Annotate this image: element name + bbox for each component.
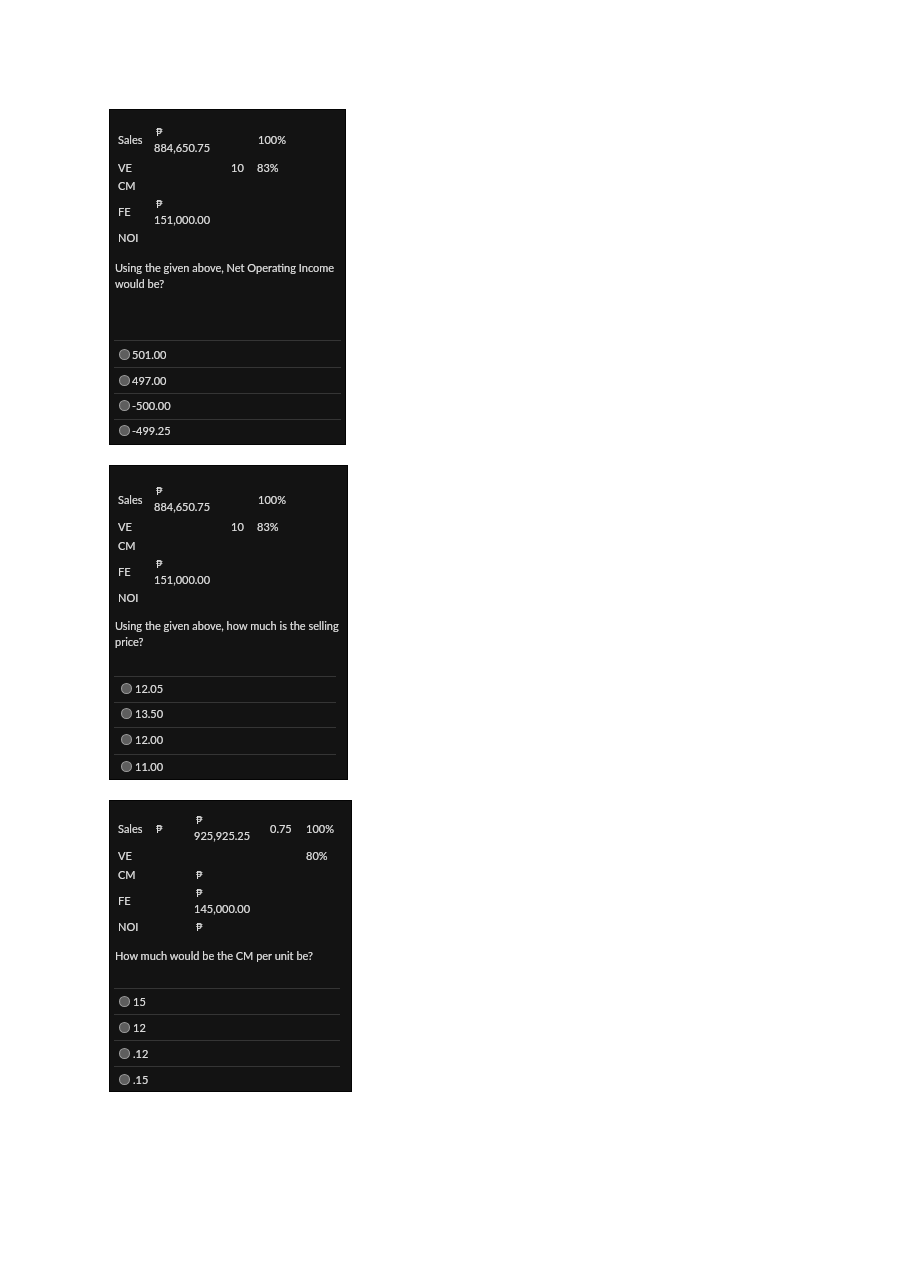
staticText: ₱ <box>196 920 203 933</box>
staticText: 13.50 <box>135 707 164 720</box>
button[interactable]: -499.25 <box>110 419 344 444</box>
staticText: -500.00 <box>132 399 171 412</box>
staticText: How much would be the CM per unit be? <box>115 949 313 962</box>
button[interactable]: -500.00 <box>110 393 344 419</box>
staticText: VE <box>118 849 132 862</box>
button[interactable]: 15 <box>110 988 351 1014</box>
staticText: .12 <box>133 1047 149 1060</box>
button[interactable]: .12 <box>110 1040 351 1066</box>
staticText: 497.00 <box>132 374 167 387</box>
staticText: 100% <box>306 822 334 835</box>
staticText: 12.00 <box>135 733 164 746</box>
staticText: ₱ <box>156 484 163 497</box>
staticText: 12 <box>133 1021 146 1034</box>
staticText: 10 <box>231 520 244 533</box>
button[interactable]: 12.00 <box>110 727 347 754</box>
staticText: CM <box>118 179 136 192</box>
staticText: FE <box>118 894 131 907</box>
button[interactable]: 497.00 <box>110 367 344 394</box>
staticText: Using the given above, how much is the s… <box>115 619 347 648</box>
staticText: 925,925.25 <box>194 829 251 842</box>
staticText: ₱ <box>156 557 163 570</box>
staticText: Sales <box>118 822 143 835</box>
staticText: NOI <box>118 920 139 933</box>
staticText: ₱ <box>196 813 203 826</box>
button[interactable]: 501.00 <box>110 340 344 367</box>
staticText: Sales <box>118 493 143 506</box>
staticText: ₱ <box>196 886 203 899</box>
staticText: -499.25 <box>132 424 171 437</box>
staticText: VE <box>118 520 132 533</box>
staticText: 0.75 <box>270 822 292 835</box>
staticText: .15 <box>133 1073 149 1086</box>
staticText: NOI <box>118 231 139 244</box>
staticText: 11.00 <box>135 760 164 773</box>
staticText: 100% <box>258 133 286 146</box>
staticText: 15 <box>133 995 146 1008</box>
staticText: 80% <box>306 849 328 862</box>
staticText: 151,000.00 <box>154 213 211 226</box>
button[interactable]: 12.05 <box>110 676 347 702</box>
staticText: 884,650.75 <box>154 141 211 154</box>
staticText: VE <box>118 161 132 174</box>
staticText: 145,000.00 <box>194 902 251 915</box>
staticText: FE <box>118 565 131 578</box>
staticText: ₱ <box>156 822 163 835</box>
staticText: 100% <box>258 493 286 506</box>
button[interactable]: 11.00 <box>110 754 347 779</box>
staticText: 151,000.00 <box>154 573 211 586</box>
staticText: ₱ <box>156 125 163 138</box>
staticText: 83% <box>257 520 279 533</box>
staticText: CM <box>118 868 136 881</box>
staticText: CM <box>118 539 136 552</box>
staticText: Sales <box>118 133 143 146</box>
staticText: ₱ <box>156 197 163 210</box>
staticText: 884,650.75 <box>154 500 211 513</box>
button[interactable]: 13.50 <box>110 702 347 727</box>
staticText: 12.05 <box>135 682 164 695</box>
staticText: FE <box>118 205 131 218</box>
staticText: ₱ <box>196 868 203 881</box>
button[interactable]: .15 <box>110 1066 351 1092</box>
staticText: 10 <box>231 161 244 174</box>
staticText: Using the given above, Net Operating Inc… <box>115 261 343 290</box>
staticText: NOI <box>118 591 139 604</box>
staticText: 83% <box>257 161 279 174</box>
staticText: 501.00 <box>132 348 167 361</box>
button[interactable]: 12 <box>110 1014 351 1040</box>
